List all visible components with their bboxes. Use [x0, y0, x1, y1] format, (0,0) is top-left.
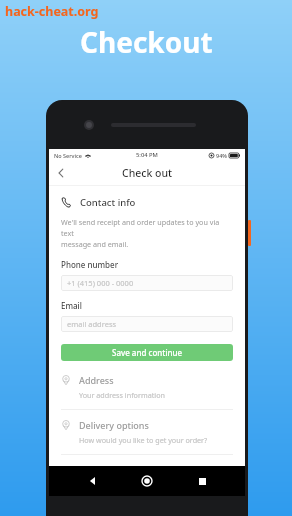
- staticText: Check out: [122, 166, 173, 180]
- button[interactable]: email address: [61, 316, 233, 332]
- staticText: Phone number: [61, 259, 119, 270]
- button[interactable]: Save and continue: [61, 344, 233, 361]
- staticText: Your address information: [79, 390, 165, 400]
- button[interactable]: Home: [136, 470, 158, 492]
- staticText: hack-cheat.org: [5, 3, 99, 20]
- button[interactable]: +1 (415) 000 - 0000: [61, 275, 233, 291]
- staticText: +1 (415) 000 - 0000: [67, 278, 134, 288]
- button[interactable]: Back: [82, 470, 104, 492]
- staticText: email address: [67, 319, 117, 329]
- button[interactable]: Recents: [191, 470, 213, 492]
- staticText: We'll send receipt and order updates to …: [61, 217, 233, 249]
- staticText: Checkout: [80, 23, 213, 61]
- staticText: Contact info: [80, 196, 136, 209]
- staticText: Save and continue: [112, 347, 183, 358]
- staticText: How would you like to get your order?: [79, 435, 208, 445]
- button[interactable]: Address: [61, 374, 233, 419]
- staticText: Email: [61, 300, 82, 311]
- staticText: Delivery options: [79, 419, 149, 431]
- staticText: No Service: [54, 152, 82, 159]
- button[interactable]: Back: [49, 161, 73, 185]
- staticText: Address: [79, 374, 114, 386]
- button[interactable]: Delivery options: [61, 419, 233, 464]
- staticText: 5:04 PM: [136, 151, 158, 159]
- staticText: 94%: [216, 152, 227, 159]
